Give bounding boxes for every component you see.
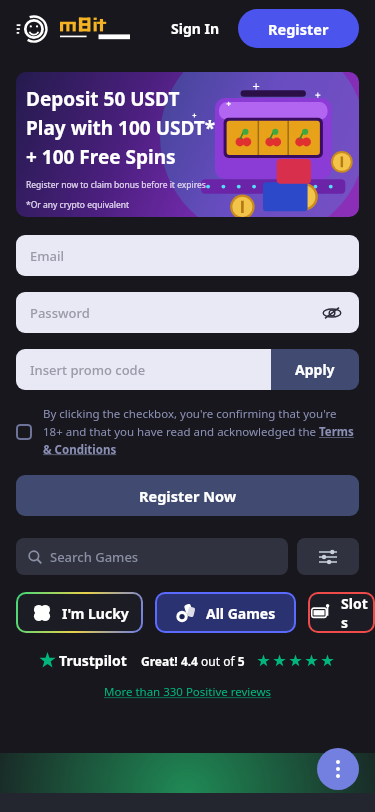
staticText: By clicking the checkbox, you're confirm…	[43, 406, 359, 457]
staticText: Apply	[295, 360, 335, 379]
staticText: All Games	[206, 604, 276, 623]
button[interactable]: Filters	[297, 538, 359, 575]
staticText: Register	[268, 19, 329, 39]
staticText: Trustpilot	[59, 651, 127, 670]
staticText: Password	[30, 304, 90, 322]
button[interactable]: I'm Lucky	[18, 594, 141, 631]
staticText: Register Now	[139, 486, 237, 506]
button[interactable]: Password	[16, 292, 359, 333]
staticText: *Or any crypto equivalent	[26, 199, 130, 211]
button[interactable]: Email	[16, 235, 359, 276]
button[interactable]: Sign In	[161, 11, 230, 46]
button[interactable]: Slots	[310, 594, 373, 631]
button[interactable]: All Games	[157, 594, 294, 631]
button[interactable]: Register	[238, 9, 359, 48]
button[interactable]: Menu	[16, 13, 48, 45]
staticText: Search Games	[50, 548, 139, 566]
staticText: I'm Lucky	[62, 604, 129, 623]
staticText: Play with 100 USDT*	[26, 115, 216, 141]
button[interactable]: Show password	[321, 302, 343, 324]
staticText: + 100 Free Spins	[26, 144, 176, 170]
button[interactable]: Insert promo code	[16, 349, 271, 390]
staticText: Deposit 50 USDT	[26, 86, 180, 112]
button[interactable]: By clicking the checkbox, you're confirm…	[16, 406, 359, 457]
staticText: Register now to claim bonus before it ex…	[26, 179, 206, 191]
button[interactable]: Apply	[271, 349, 359, 390]
button[interactable]: mBit Casino	[60, 14, 130, 44]
button[interactable]: Deposit 50 USDT	[16, 72, 359, 217]
staticText: Insert promo code	[30, 361, 146, 379]
button[interactable]: Register Now	[16, 475, 359, 516]
staticText: Great! 4.4 out of 5	[141, 653, 245, 669]
staticText: Slots	[341, 594, 373, 631]
button[interactable]: Search Games	[16, 538, 288, 575]
staticText: More than 330 Positive reviews	[104, 684, 272, 700]
staticText: Sign In	[171, 19, 220, 38]
staticText: Email	[30, 247, 65, 265]
button[interactable]: More than 330 Positive reviews	[104, 684, 272, 700]
button[interactable]: More options	[317, 748, 359, 790]
